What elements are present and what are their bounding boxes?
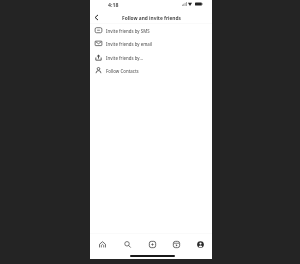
staticText: Follow Contacts bbox=[106, 68, 139, 74]
staticText: Follow and invite friends bbox=[122, 15, 181, 22]
button[interactable]: Home bbox=[90, 234, 115, 254]
button[interactable]: Follow Contacts bbox=[90, 64, 212, 77]
button[interactable]: Create bbox=[140, 234, 164, 254]
button[interactable]: Invite friends by... bbox=[90, 51, 212, 64]
button[interactable]: Back bbox=[91, 12, 102, 23]
button[interactable]: Profile bbox=[188, 234, 212, 254]
staticText: 4:18 bbox=[108, 1, 119, 8]
staticText: Invite friends by email bbox=[106, 41, 153, 47]
button[interactable]: Invite friends by SMS bbox=[90, 24, 212, 37]
button[interactable]: Invite friends by email bbox=[90, 37, 212, 50]
button[interactable]: Search bbox=[115, 234, 140, 254]
staticText: Invite friends by SMS bbox=[106, 28, 150, 34]
button[interactable]: Reels bbox=[164, 234, 188, 254]
staticText: Invite friends by... bbox=[106, 55, 143, 61]
